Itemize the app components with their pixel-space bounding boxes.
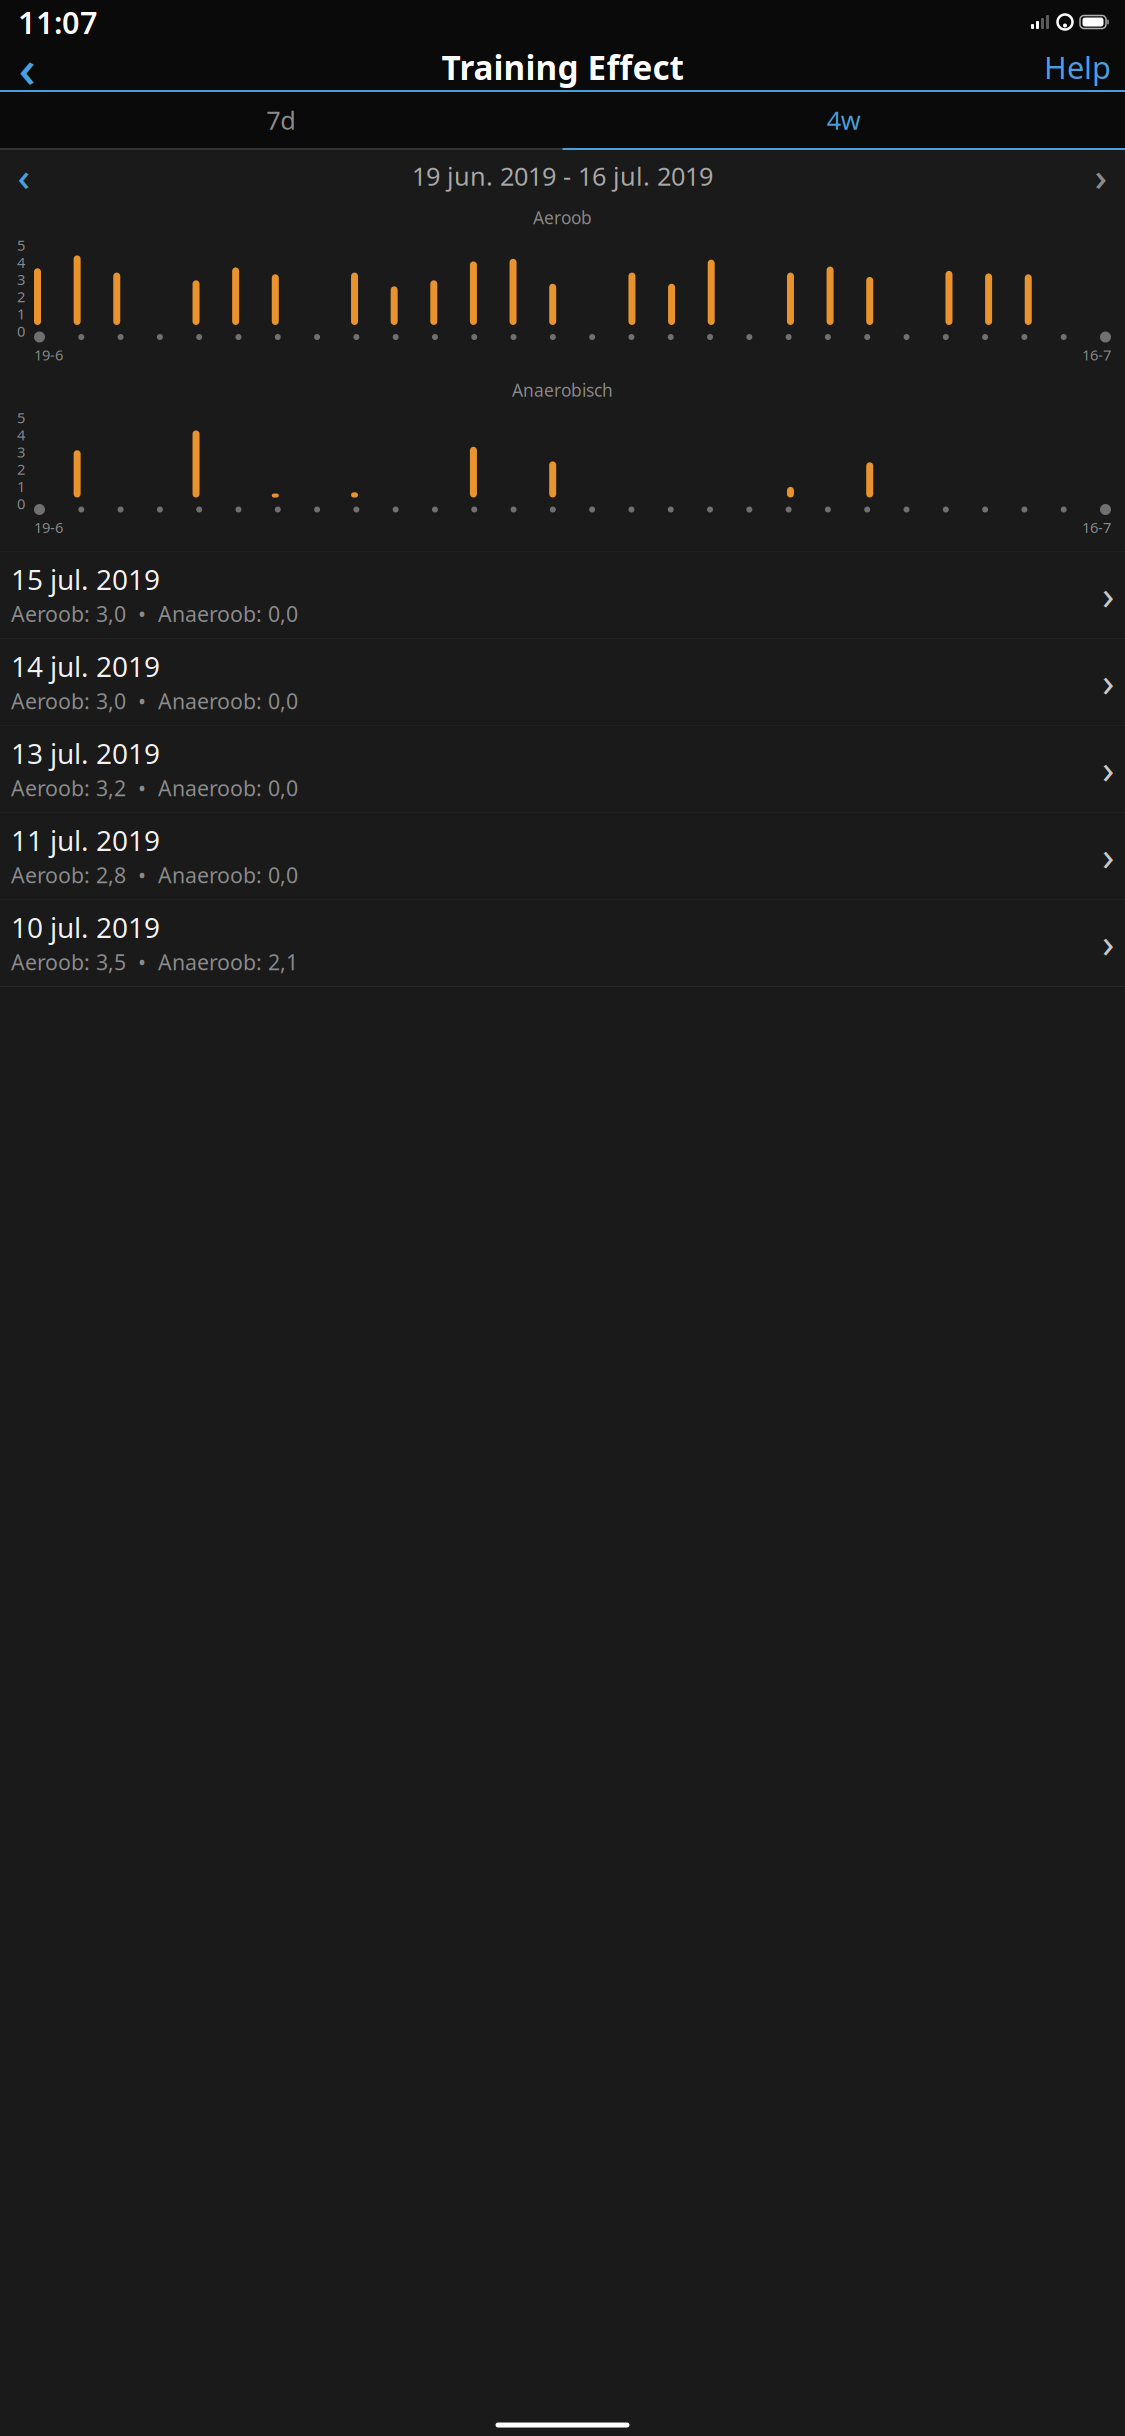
staticText: 7d xyxy=(266,103,296,137)
staticText: 14 jul. 2019 xyxy=(11,647,160,685)
staticText: 0 xyxy=(17,321,25,341)
button[interactable]: 11 jul. 2019 xyxy=(0,812,1125,899)
staticText: Help xyxy=(1044,47,1111,87)
staticText: 11:07 xyxy=(18,2,98,42)
button[interactable]: 13 jul. 2019 xyxy=(0,725,1125,812)
staticText: 2 xyxy=(17,287,25,306)
staticText: 10 jul. 2019 xyxy=(11,908,160,946)
staticText: 15 jul. 2019 xyxy=(11,560,160,598)
button[interactable]: Next period xyxy=(1077,154,1125,198)
button[interactable]: 4w xyxy=(562,92,1125,148)
staticText: Aeroob: 3,2 • Anaeroob: 0,0 xyxy=(11,774,298,802)
staticText: 16-7 xyxy=(1082,345,1111,364)
staticText: 11 jul. 2019 xyxy=(11,821,160,859)
staticText: 16-7 xyxy=(1082,517,1111,537)
button[interactable]: 7d xyxy=(0,92,562,148)
staticText: Aeroob: 3,5 • Anaeroob: 2,1 xyxy=(11,948,298,976)
staticText: Aeroob: 3,0 • Anaeroob: 0,0 xyxy=(11,687,298,715)
staticText: 13 jul. 2019 xyxy=(11,734,160,772)
staticText: Anaerobisch xyxy=(512,378,613,401)
button[interactable]: Back xyxy=(0,45,54,89)
button[interactable]: Help xyxy=(1030,45,1125,89)
button[interactable]: 15 jul. 2019 xyxy=(0,551,1125,638)
staticText: Aeroob xyxy=(533,206,592,229)
staticText: › xyxy=(1102,568,1114,621)
button[interactable]: 14 jul. 2019 xyxy=(0,638,1125,725)
staticText: 3 xyxy=(17,442,25,462)
staticText: ‹ xyxy=(17,150,30,202)
staticText: 4w xyxy=(827,103,861,137)
staticText: 19 jun. 2019 - 16 jul. 2019 xyxy=(412,159,713,193)
staticText: 0 xyxy=(17,494,25,513)
staticText: 4 xyxy=(17,425,25,444)
staticText: 1 xyxy=(17,304,25,324)
staticText: 1 xyxy=(17,477,25,496)
staticText: Training Effect xyxy=(441,45,683,89)
staticText: 2 xyxy=(17,459,25,479)
staticText: › xyxy=(1102,742,1114,795)
staticText: 3 xyxy=(17,270,25,289)
staticText: › xyxy=(1094,150,1107,202)
button[interactable]: Previous period xyxy=(0,154,48,198)
staticText: 19-6 xyxy=(34,517,63,537)
staticText: ‹ xyxy=(18,32,35,102)
staticText: 19-6 xyxy=(34,345,63,364)
staticText: 5 xyxy=(17,408,25,427)
staticText: Aeroob: 3,0 • Anaeroob: 0,0 xyxy=(11,600,298,628)
staticText: › xyxy=(1102,655,1114,708)
staticText: › xyxy=(1102,829,1114,882)
staticText: 5 xyxy=(17,235,25,255)
staticText: Aeroob: 2,8 • Anaeroob: 0,0 xyxy=(11,861,298,889)
staticText: 4 xyxy=(17,252,25,272)
button[interactable]: 10 jul. 2019 xyxy=(0,899,1125,986)
staticText: › xyxy=(1102,916,1114,969)
